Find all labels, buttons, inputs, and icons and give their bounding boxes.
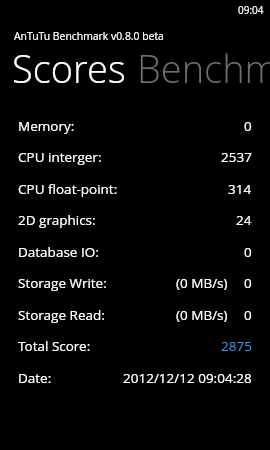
staticText: 24	[236, 211, 252, 229]
staticText: CPU float-point:	[18, 180, 118, 198]
button[interactable]: Memory:	[0, 110, 270, 142]
button[interactable]: Storage Write:	[0, 267, 270, 299]
staticText: Storage Read:	[18, 306, 105, 324]
staticText: 0	[244, 274, 252, 292]
staticText: Total Score:	[18, 337, 91, 355]
staticText: 09:04	[238, 3, 264, 17]
staticText: Scores	[12, 42, 126, 88]
staticText: 314	[228, 180, 252, 198]
staticText: AnTuTu Benchmark v0.8.0 beta	[14, 29, 164, 43]
staticText: 2537	[221, 148, 252, 166]
staticText: Memory:	[18, 117, 75, 135]
staticText: (0 MB/s)	[176, 306, 228, 324]
button[interactable]: Scores	[12, 42, 126, 88]
button[interactable]: Database IO:	[0, 236, 270, 268]
staticText: CPU interger:	[18, 148, 102, 166]
button[interactable]: Benchmark	[137, 42, 270, 88]
staticText: 2D graphics:	[18, 211, 96, 229]
staticText: 0	[244, 306, 252, 324]
button[interactable]: 2D graphics:	[0, 204, 270, 236]
other: Status bar, clock 09:04	[0, 0, 270, 20]
button[interactable]: Total Score:	[0, 330, 270, 362]
staticText: Storage Write:	[18, 274, 107, 292]
button[interactable]: CPU float-point:	[0, 173, 270, 205]
staticText: 2012/12/12 09:04:28	[123, 369, 252, 387]
staticText: 2875	[221, 337, 252, 355]
staticText: 0	[244, 243, 252, 261]
button[interactable]: Date:	[0, 362, 270, 394]
staticText: Date:	[18, 369, 52, 387]
button[interactable]: CPU interger:	[0, 141, 270, 173]
button[interactable]: Storage Read:	[0, 299, 270, 331]
staticText: Benchmark	[137, 42, 270, 88]
staticText: 0	[244, 117, 252, 135]
staticText: (0 MB/s)	[176, 274, 228, 292]
staticText: Database IO:	[18, 243, 99, 261]
